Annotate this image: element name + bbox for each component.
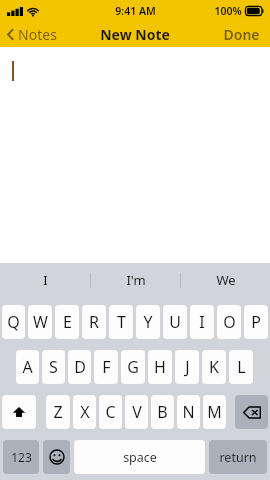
staticText: Q	[7, 311, 20, 333]
staticText: O	[223, 311, 236, 333]
staticText: W	[33, 311, 48, 333]
button[interactable]: R	[82, 305, 106, 339]
button[interactable]: Q	[2, 305, 25, 339]
button[interactable]: C	[99, 395, 122, 429]
staticText: 123	[11, 449, 32, 465]
button[interactable]: V	[125, 395, 148, 429]
staticText: I'm	[126, 271, 146, 289]
staticText: D	[74, 356, 86, 378]
staticText: Done	[223, 25, 260, 44]
button[interactable]: E	[55, 305, 79, 339]
staticText: F	[102, 356, 111, 378]
staticText: space	[123, 449, 157, 466]
button[interactable]: H	[148, 350, 172, 384]
button[interactable]	[0, 47, 270, 263]
button[interactable]: L	[229, 350, 253, 384]
staticText: H	[154, 356, 166, 378]
button[interactable]: J	[175, 350, 199, 384]
staticText: G	[127, 356, 139, 378]
button[interactable]: I	[0, 263, 90, 297]
staticText: R	[89, 311, 99, 333]
staticText: 9:41 AM	[115, 4, 156, 18]
button[interactable]: Emoji	[43, 440, 70, 474]
staticText: I	[43, 271, 48, 289]
button[interactable]: Notes	[0, 22, 67, 47]
button[interactable]: space	[74, 440, 205, 474]
button[interactable]: D	[68, 350, 91, 384]
staticText: M	[207, 401, 222, 423]
staticText: S	[49, 356, 58, 378]
button[interactable]: A	[16, 350, 39, 384]
button[interactable]: S	[42, 350, 65, 384]
button[interactable]: M	[203, 395, 226, 429]
staticText: Y	[143, 311, 153, 333]
button[interactable]: I'm	[91, 263, 180, 297]
button[interactable]: O	[217, 305, 241, 339]
staticText: N	[182, 401, 195, 423]
staticText: V	[132, 401, 142, 423]
button[interactable]: G	[121, 350, 145, 384]
staticText: J	[185, 356, 190, 378]
staticText: U	[169, 311, 181, 333]
staticText: C	[105, 401, 116, 423]
staticText: B	[157, 401, 168, 423]
button[interactable]: X	[73, 395, 96, 429]
button[interactable]: K	[202, 350, 226, 384]
staticText: L	[237, 356, 246, 378]
staticText: We	[216, 271, 236, 289]
staticText: 100%	[214, 4, 242, 18]
staticText: return	[219, 449, 257, 466]
button[interactable]: We	[181, 263, 270, 297]
button[interactable]: Shift	[2, 395, 36, 429]
button[interactable]: B	[151, 395, 174, 429]
staticText: Z	[53, 401, 63, 423]
staticText: T	[117, 311, 126, 333]
staticText: I	[199, 311, 205, 333]
staticText: A	[22, 356, 33, 378]
button[interactable]: N	[177, 395, 200, 429]
staticText: E	[63, 311, 72, 333]
button[interactable]: U	[163, 305, 187, 339]
staticText: K	[209, 356, 219, 378]
staticText: Notes	[18, 25, 57, 44]
staticText: New Note	[100, 25, 170, 44]
button[interactable]: return	[209, 440, 267, 474]
staticText: X	[80, 401, 90, 423]
button[interactable]: I	[190, 305, 214, 339]
button[interactable]: Y	[136, 305, 160, 339]
button[interactable]: Backspace	[235, 395, 268, 429]
button[interactable]: Done	[213, 22, 270, 47]
button[interactable]: 123	[3, 440, 39, 474]
button[interactable]: T	[109, 305, 133, 339]
button[interactable]: Z	[46, 395, 70, 429]
button[interactable]: W	[28, 305, 52, 339]
staticText: P	[251, 311, 261, 333]
button[interactable]: F	[94, 350, 118, 384]
button[interactable]: P	[244, 305, 268, 339]
